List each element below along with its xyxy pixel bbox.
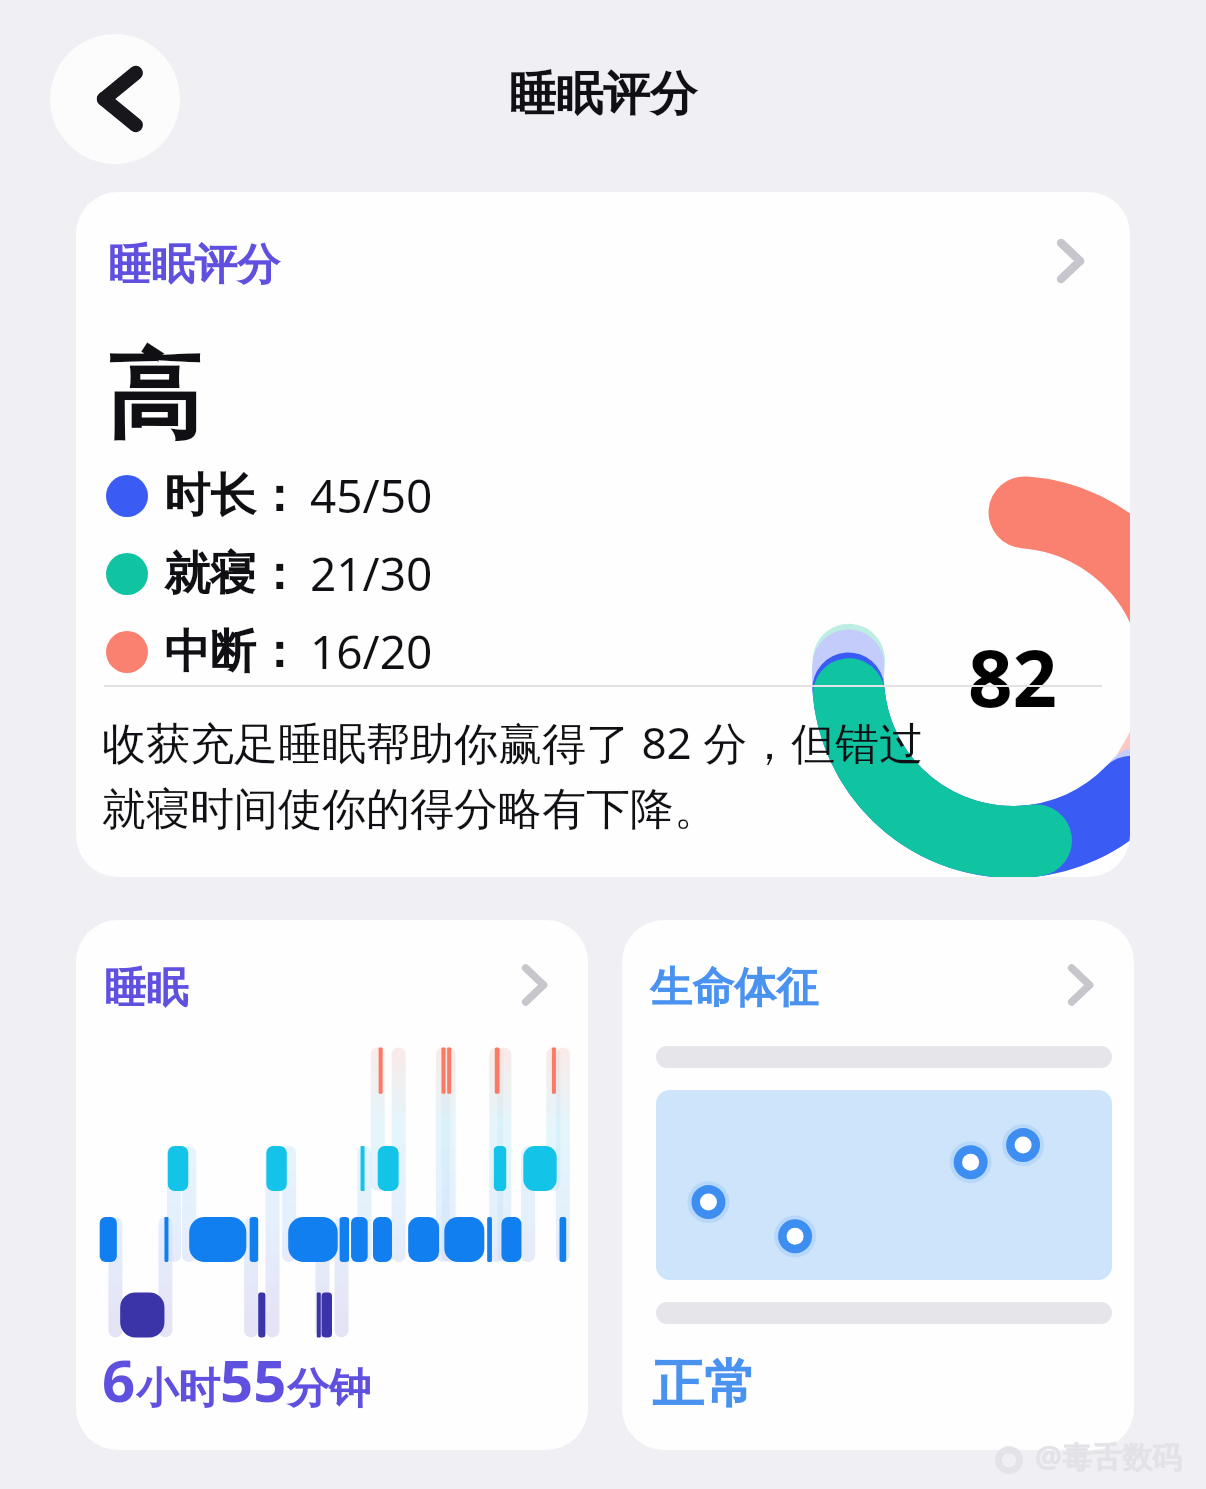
staticText: 生命体征 xyxy=(650,962,818,1015)
staticText: 小时 xyxy=(136,1363,220,1416)
staticText: 高 xyxy=(106,337,202,458)
staticText: @毒舌数码 xyxy=(1035,1436,1182,1477)
button[interactable]: 睡眠评分 xyxy=(76,192,1130,877)
staticText: 睡眠 xyxy=(104,962,188,1015)
button[interactable]: 生命体征 xyxy=(622,920,1134,1450)
staticText: 55 xyxy=(220,1340,287,1419)
button[interactable]: Back xyxy=(50,34,180,164)
staticText: 45/50 xyxy=(310,464,433,527)
staticText: 16/20 xyxy=(310,620,433,683)
staticText: 睡眠评分 xyxy=(108,238,280,292)
staticText: 睡眠评分 xyxy=(509,65,697,124)
staticText: 就寝： xyxy=(164,545,302,603)
staticText: 6 xyxy=(102,1340,136,1419)
button[interactable]: 睡眠 xyxy=(76,920,588,1450)
staticText: 正常 xyxy=(652,1352,756,1418)
staticText: 就寝时间使你的得分略有下降。 xyxy=(102,782,718,837)
staticText: 21/30 xyxy=(310,542,433,605)
staticText: 时长： xyxy=(164,467,302,525)
staticText: 82 xyxy=(968,624,1058,730)
staticText: 中断： xyxy=(164,623,302,681)
staticText: 分钟 xyxy=(287,1363,371,1416)
staticText: 收获充足睡眠帮助你赢得了 82 分，但错过 xyxy=(102,712,924,772)
